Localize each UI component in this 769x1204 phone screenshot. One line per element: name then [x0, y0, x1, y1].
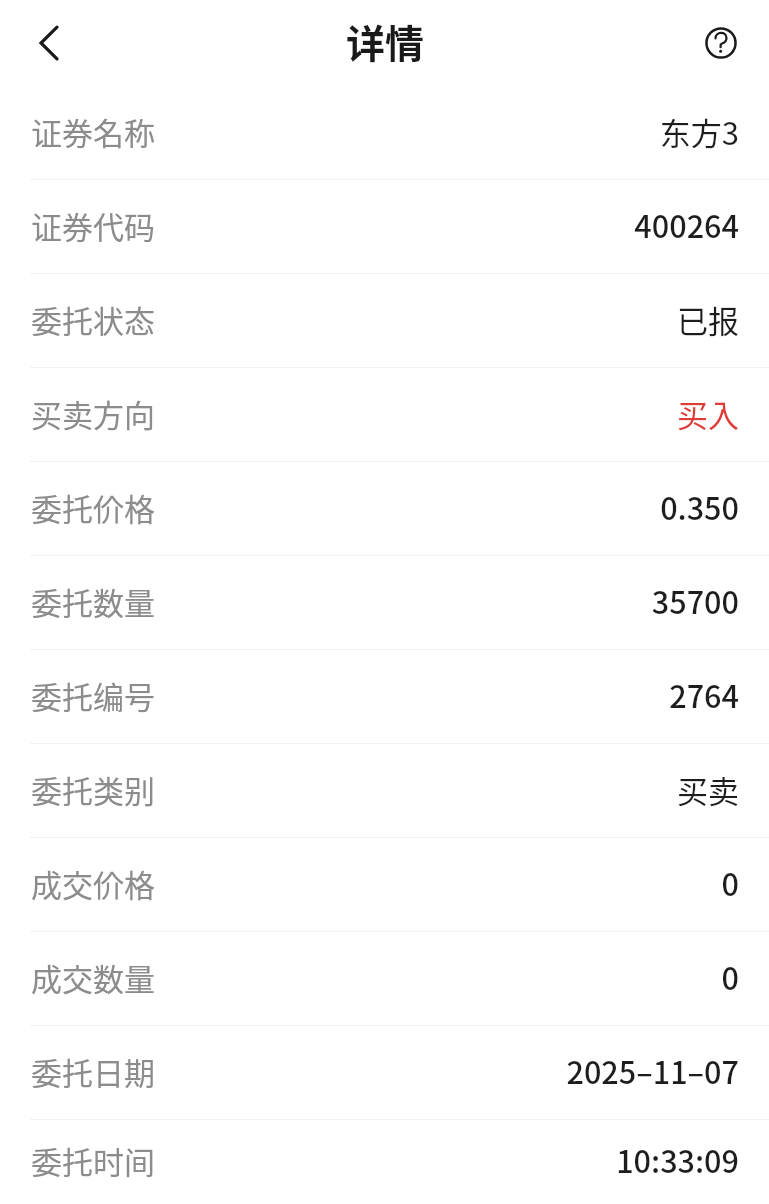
staticText: 证券名称 [31, 109, 155, 154]
staticText: 证券代码 [31, 203, 155, 248]
staticText: 委托价格 [31, 485, 155, 530]
staticText: 成交价格 [31, 861, 155, 906]
staticText: 0 [721, 955, 739, 999]
staticText: 2764 [669, 673, 739, 717]
staticText: 0.350 [660, 485, 739, 529]
button[interactable]: 委托类别 [0, 744, 769, 838]
staticText: 东方3 [659, 109, 739, 154]
button[interactable]: 委托价格 [0, 462, 769, 556]
button[interactable]: 委托数量 [0, 556, 769, 650]
staticText: 买卖 [677, 767, 739, 812]
button[interactable]: 成交价格 [0, 838, 769, 932]
button[interactable]: 证券名称 [0, 86, 769, 180]
button[interactable]: 成交数量 [0, 932, 769, 1026]
staticText: 已报 [677, 297, 739, 342]
staticText: 委托状态 [31, 297, 155, 342]
button[interactable]: Help [693, 15, 749, 71]
button[interactable]: 委托编号 [0, 650, 769, 744]
button[interactable]: Back [19, 13, 79, 73]
staticText: 委托日期 [31, 1049, 155, 1094]
staticText: 400264 [634, 203, 739, 247]
staticText: 委托时间 [31, 1138, 155, 1183]
staticText: 详情 [346, 13, 425, 69]
button[interactable]: 买卖方向 [0, 368, 769, 462]
staticText: 买入 [677, 391, 739, 436]
staticText: 委托数量 [31, 579, 155, 624]
staticText: 委托类别 [31, 767, 155, 812]
button[interactable]: 委托日期 [0, 1026, 769, 1120]
staticText: 35700 [651, 579, 739, 623]
staticText: 委托编号 [31, 673, 155, 718]
staticText: 2025–11–07 [566, 1049, 739, 1093]
button[interactable]: 委托状态 [0, 274, 769, 368]
staticText: 买卖方向 [31, 391, 155, 436]
staticText: 10:33:09 [616, 1138, 739, 1182]
button[interactable]: 证券代码 [0, 180, 769, 274]
staticText: 成交数量 [31, 955, 155, 1000]
button[interactable]: 委托时间 [0, 1120, 769, 1204]
staticText: 0 [721, 861, 739, 905]
